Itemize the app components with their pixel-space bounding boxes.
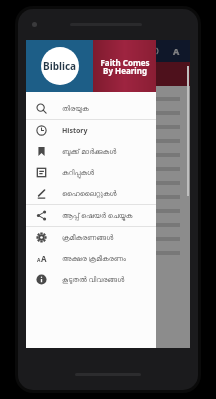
staticText: History bbox=[62, 126, 88, 136]
staticText: A bbox=[41, 253, 47, 264]
staticText: Biblica bbox=[43, 59, 77, 73]
staticText: കുറിപ്പുകൾ bbox=[62, 169, 95, 176]
button[interactable]: തിരയുക bbox=[26, 98, 156, 119]
staticText: അക്ഷര ക്രമീകരണം bbox=[62, 254, 126, 264]
staticText: തിരയുക bbox=[62, 105, 89, 112]
button[interactable]: കൂടുതൽ വിവരങ്ങൾ bbox=[26, 269, 156, 290]
staticText: Faith Comes By Hearing bbox=[100, 57, 150, 76]
button[interactable]: ബുക്ക് മാർക്കുകൾ bbox=[26, 141, 156, 162]
staticText: ബുക്ക് മാർക്കുകൾ bbox=[62, 147, 117, 157]
staticText: ക്രമീകരണങ്ങൾ bbox=[62, 234, 114, 241]
staticText: കൂടുതൽ വിവരങ്ങൾ bbox=[62, 275, 125, 285]
staticText: ആപ്പ് ഷെയർ ചെയ്യുക bbox=[62, 211, 133, 221]
button[interactable]: Text size bbox=[168, 43, 184, 59]
staticText: ഹൈലൈറ്റുകൾ bbox=[62, 190, 117, 197]
button[interactable]: ക്രമീകരണങ്ങൾ bbox=[26, 227, 156, 248]
button[interactable]: ഹൈലൈറ്റുകൾ bbox=[26, 183, 156, 204]
button[interactable]: A bbox=[26, 248, 156, 269]
button[interactable]: കുറിപ്പുകൾ bbox=[26, 162, 156, 183]
button[interactable]: Audio bbox=[146, 43, 162, 59]
staticText: A bbox=[37, 257, 41, 264]
button[interactable]: ആപ്പ് ഷെയർ ചെയ്യുക bbox=[26, 205, 156, 226]
button[interactable]: History bbox=[26, 120, 156, 141]
staticText: A bbox=[173, 45, 180, 57]
